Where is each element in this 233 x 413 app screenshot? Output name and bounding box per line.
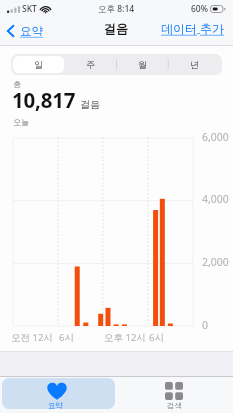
staticText: 오후 12시 xyxy=(104,331,146,344)
button[interactable]: 요약 xyxy=(4,20,46,42)
staticText: 0 xyxy=(202,318,209,332)
staticText: 일 xyxy=(34,59,43,70)
staticText: 6시 xyxy=(149,331,164,344)
button[interactable]: 데이터 추가 xyxy=(158,16,228,40)
staticText: 총 xyxy=(13,79,21,89)
staticText: 걸음 xyxy=(80,98,100,111)
staticText: 검색 xyxy=(163,401,186,410)
staticText: 요약 xyxy=(20,24,43,38)
staticText: 오후 8:14 xyxy=(98,3,135,15)
staticText: 60% xyxy=(191,3,208,15)
staticText: 6,000 xyxy=(202,130,229,144)
staticText: 년 xyxy=(190,59,199,70)
staticText: 2,000 xyxy=(202,255,229,269)
staticText: 월 xyxy=(138,59,147,70)
staticText: 주 xyxy=(86,59,95,70)
button[interactable]: 월 xyxy=(116,56,168,73)
staticText: 10,817 xyxy=(12,86,76,114)
button[interactable]: 검색 xyxy=(120,378,230,409)
staticText: 요약 xyxy=(44,401,67,409)
staticText: 오늘 xyxy=(13,117,29,127)
staticText: 오전 12시 xyxy=(11,331,53,344)
staticText: 4,000 xyxy=(202,192,229,206)
button[interactable]: 년 xyxy=(168,56,220,73)
button[interactable]: 주 xyxy=(64,56,116,73)
button[interactable]: 일 xyxy=(13,56,64,73)
staticText: 6시 xyxy=(59,331,74,344)
button[interactable]: 요약 xyxy=(2,378,115,409)
staticText: 데이터 추가 xyxy=(161,20,225,36)
staticText: 걸음 xyxy=(104,21,128,36)
staticText: SKT xyxy=(22,3,37,15)
